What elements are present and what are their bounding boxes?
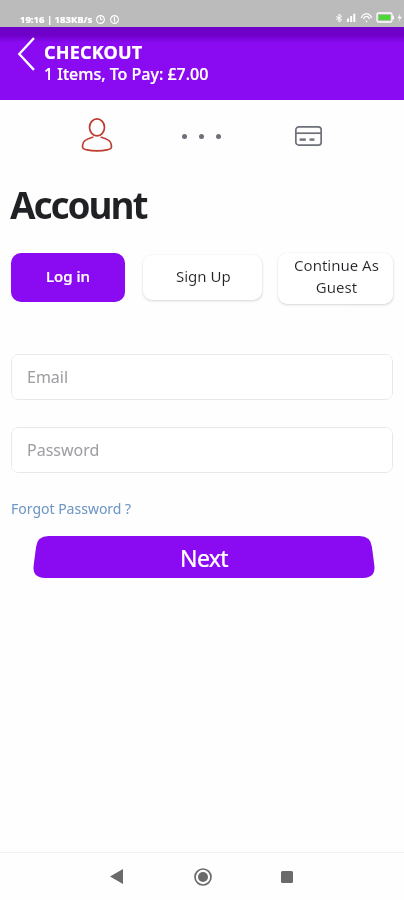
- button[interactable]: Payment step: [288, 116, 328, 156]
- button[interactable]: Back: [6, 39, 46, 69]
- button[interactable]: Back: [96, 856, 137, 897]
- staticText: Password: [27, 439, 100, 461]
- staticText: Next: [180, 542, 229, 573]
- staticText: Email: [27, 366, 69, 388]
- staticText: Account: [10, 179, 147, 229]
- button[interactable]: Recents: [266, 856, 307, 897]
- staticText: 1 Items, To Pay: £7.00: [44, 63, 209, 85]
- button[interactable]: Log in: [11, 253, 125, 302]
- button[interactable]: Continue As Guest: [278, 253, 393, 304]
- button[interactable]: Password: [11, 427, 393, 473]
- staticText: Log in: [46, 266, 90, 286]
- staticText: 19:16 | 183KB/s: [20, 13, 93, 26]
- button[interactable]: Account step: [74, 112, 120, 158]
- button[interactable]: Email: [11, 354, 393, 400]
- button[interactable]: Home: [182, 856, 223, 897]
- staticText: Sign Up: [176, 266, 231, 286]
- button[interactable]: Sign Up: [143, 255, 262, 300]
- button[interactable]: Next: [32, 536, 376, 578]
- staticText: CHECKOUT: [44, 40, 143, 65]
- button[interactable]: Forgot Password ?: [11, 499, 132, 518]
- staticText: Continue As Guest: [279, 255, 393, 298]
